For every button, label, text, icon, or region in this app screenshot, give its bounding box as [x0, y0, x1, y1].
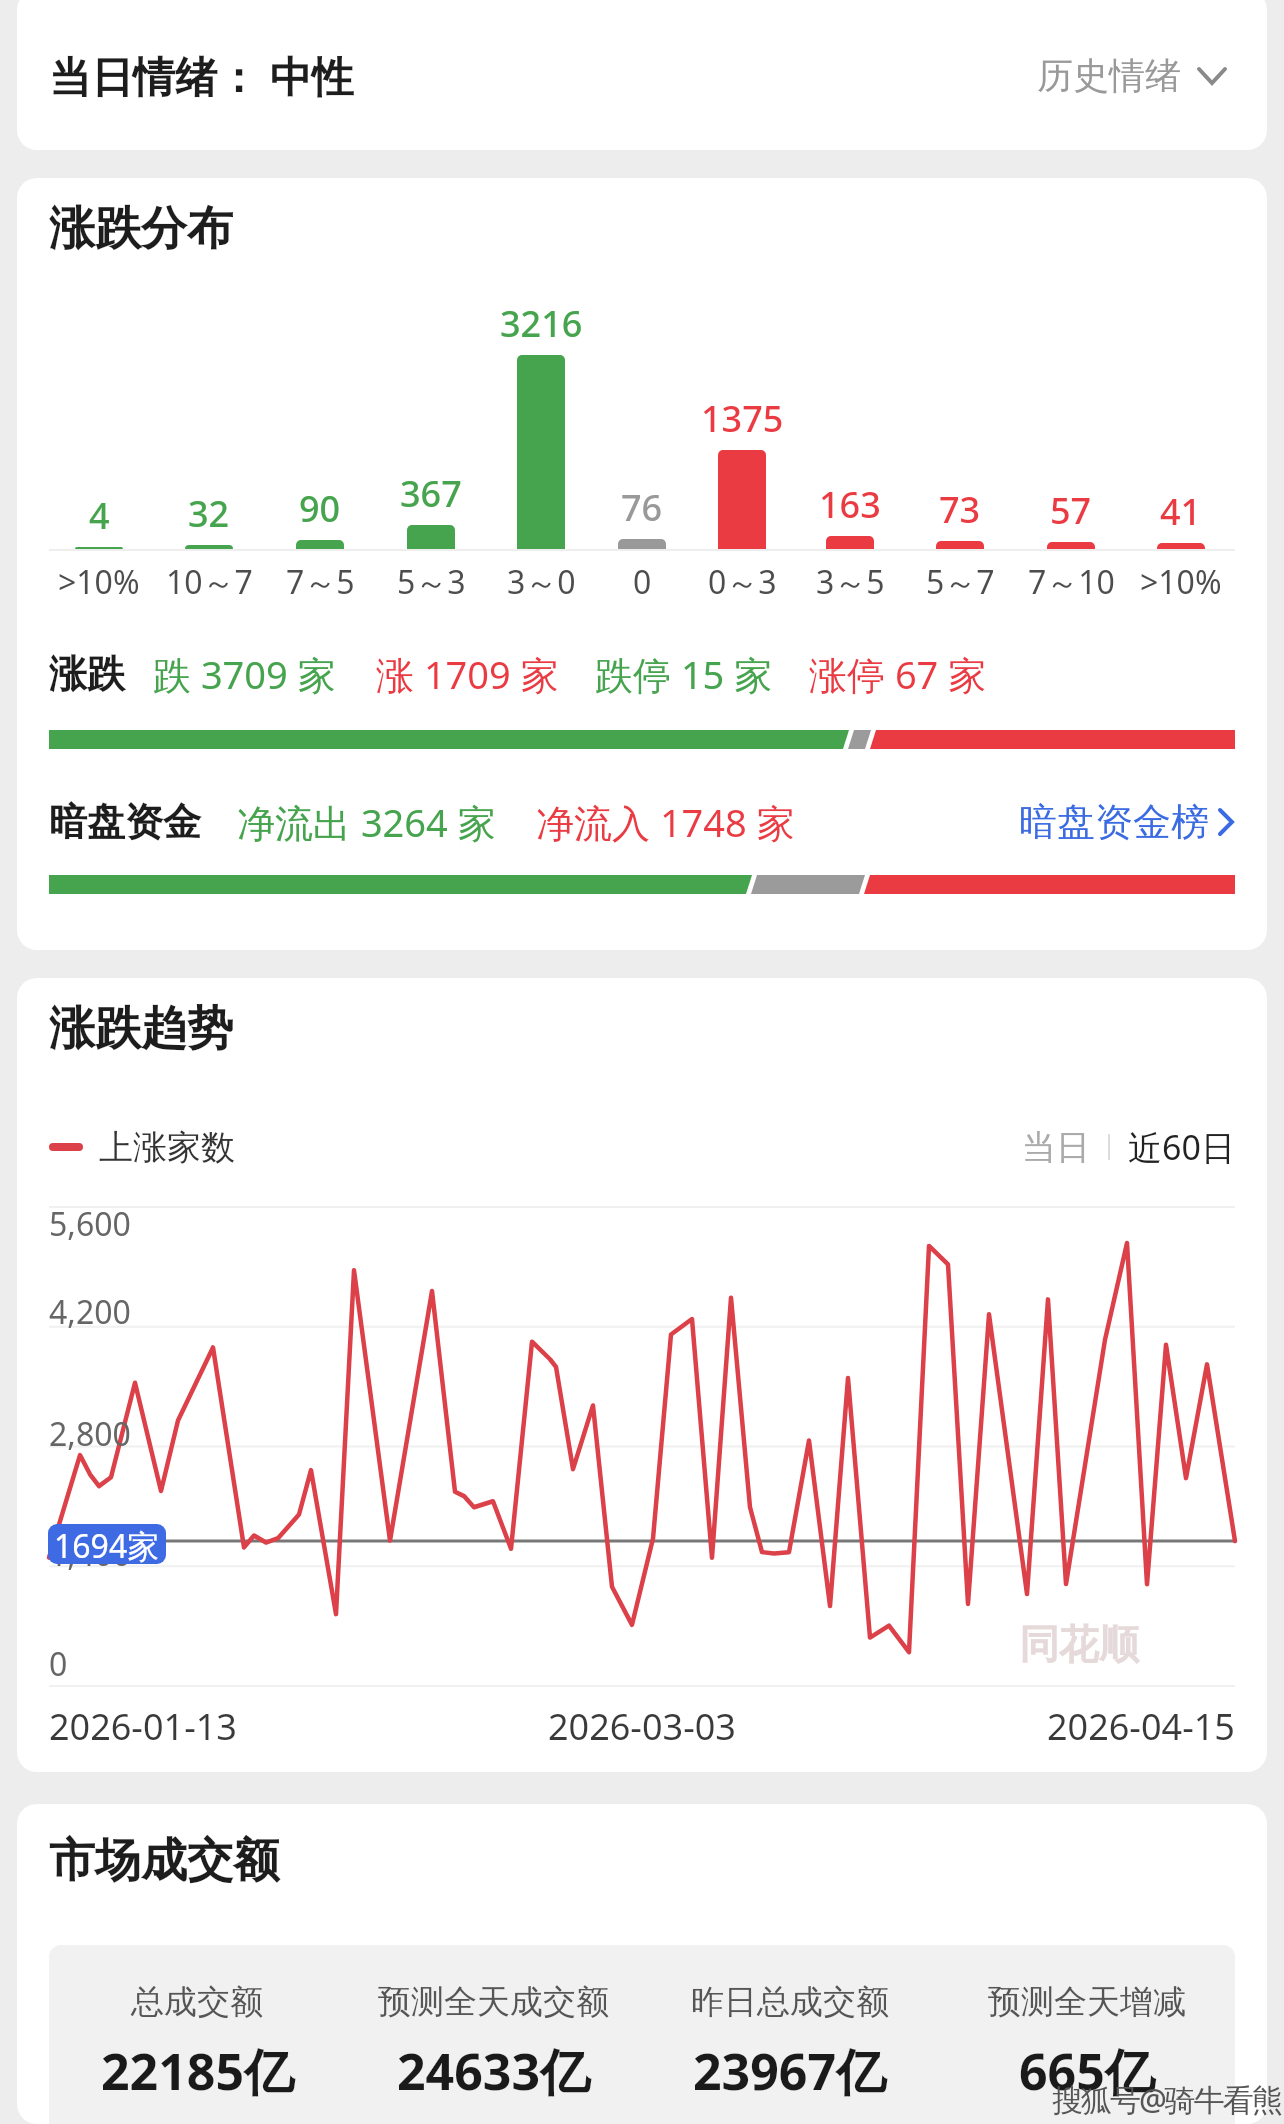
staticText: 367 — [400, 469, 462, 517]
staticText: 57 — [1050, 486, 1092, 534]
staticText: 7～10 — [1028, 560, 1115, 604]
staticText: 22185亿 — [101, 2037, 294, 2105]
staticText: 上涨家数 — [99, 1126, 235, 1169]
staticText: >10% — [1140, 560, 1222, 604]
staticText: 同花顺 — [1019, 1619, 1139, 1669]
staticText: 涨跌趋势 — [49, 1000, 233, 1058]
staticText: 2026-03-03 — [548, 1702, 736, 1751]
staticText: 3～0 — [507, 560, 576, 604]
staticText: 跌 3709 家 — [153, 648, 336, 700]
staticText: 总成交额 — [131, 1981, 263, 2023]
staticText: 净流入 1748 家 — [536, 796, 795, 848]
staticText: 665亿 — [1019, 2037, 1155, 2105]
staticText: 净流出 3264 家 — [237, 796, 496, 848]
button[interactable]: 历史情绪 — [1037, 53, 1227, 98]
staticText: 90 — [299, 484, 341, 532]
staticText: 5～7 — [926, 560, 995, 604]
button[interactable]: 近60日 — [1128, 1124, 1235, 1170]
staticText: 预测全天增减 — [988, 1981, 1186, 2023]
button[interactable]: 当日 — [1022, 1126, 1090, 1169]
staticText: 1694家 — [54, 1524, 160, 1564]
staticText: 73 — [939, 485, 981, 533]
staticText: 市场成交额 — [49, 1832, 279, 1890]
staticText: 0 — [49, 1642, 68, 1686]
button[interactable]: 暗盘资金榜 — [1019, 798, 1235, 846]
staticText: 4,200 — [49, 1290, 131, 1334]
staticText: 当日情绪： 中性 — [49, 47, 354, 104]
staticText: 32 — [188, 489, 230, 537]
staticText: 0 — [633, 560, 652, 604]
staticText: 23967亿 — [693, 2037, 886, 2105]
staticText: >10% — [58, 560, 140, 604]
staticText: 76 — [621, 483, 663, 531]
staticText: 0～3 — [708, 560, 777, 604]
staticText: 涨跌 — [49, 650, 125, 698]
staticText: 2026-04-15 — [1047, 1702, 1235, 1751]
staticText: 涨 1709 家 — [376, 648, 559, 700]
staticText: 5～3 — [397, 560, 466, 604]
staticText: 1375 — [701, 394, 784, 442]
staticText: 暗盘资金榜 — [1019, 798, 1209, 846]
staticText: 昨日总成交额 — [691, 1981, 889, 2023]
staticText: 4 — [89, 491, 110, 539]
staticText: 2026-01-13 — [49, 1702, 237, 1751]
staticText: 10～7 — [166, 560, 253, 604]
staticText: 24633亿 — [397, 2037, 590, 2105]
staticText: 1,400 — [49, 1532, 131, 1576]
staticText: 历史情绪 — [1037, 53, 1181, 98]
staticText: 41 — [1160, 487, 1202, 535]
staticText: 5,600 — [49, 1202, 131, 1246]
staticText: 涨跌分布 — [49, 200, 233, 258]
staticText: 暗盘资金 — [49, 798, 201, 846]
staticText: 163 — [819, 480, 881, 528]
staticText: 3216 — [500, 299, 583, 347]
staticText: 3～5 — [816, 560, 885, 604]
staticText: 7～5 — [286, 560, 355, 604]
staticText: 2,800 — [49, 1412, 131, 1456]
staticText: 跌停 15 家 — [595, 648, 773, 700]
staticText: 预测全天成交额 — [378, 1981, 609, 2023]
staticText: 搜狐号@骑牛看熊 — [1052, 2078, 1281, 2120]
staticText: 涨停 67 家 — [809, 648, 987, 700]
